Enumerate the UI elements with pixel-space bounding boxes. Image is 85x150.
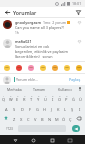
button[interactable]: 4 xyxy=(21,94,28,102)
button[interactable]: Ğ xyxy=(70,94,77,102)
button[interactable]: F xyxy=(26,104,34,112)
button[interactable]: ?123 xyxy=(1,124,17,133)
button[interactable]: Back xyxy=(11,136,19,144)
button[interactable]: Recents xyxy=(48,136,56,144)
staticText: I xyxy=(52,97,54,102)
button[interactable]: Ç xyxy=(67,114,74,122)
button[interactable]: 3 xyxy=(14,94,21,102)
button[interactable]: Voice input xyxy=(77,87,83,91)
button[interactable]: Ş xyxy=(69,104,76,112)
button[interactable]: Emoji xyxy=(3,64,10,71)
staticText: V xyxy=(34,117,37,122)
button[interactable]: L xyxy=(62,104,69,112)
staticText: E xyxy=(16,97,19,102)
button[interactable]: Like xyxy=(77,39,82,44)
staticText: Ç xyxy=(69,117,72,122)
staticText: X xyxy=(20,117,23,122)
staticText: P xyxy=(65,97,68,102)
button[interactable]: J xyxy=(48,104,55,112)
button[interactable]: 1 xyxy=(1,94,7,102)
button[interactable]: S xyxy=(10,104,18,112)
button[interactable]: N xyxy=(46,114,53,122)
staticText: D xyxy=(21,107,24,112)
staticText: 1h xyxy=(15,31,19,35)
button[interactable]: Tamam xyxy=(27,87,52,92)
button[interactable]: Merhaba xyxy=(2,87,27,92)
staticText: Z xyxy=(13,117,16,122)
staticText: Ş xyxy=(71,107,74,112)
button[interactable]: H xyxy=(41,104,48,112)
button[interactable]: Emoji xyxy=(15,64,22,71)
staticText: T xyxy=(30,97,33,102)
staticText: gnoolyorgasm xyxy=(15,20,41,25)
button[interactable]: B xyxy=(39,114,46,122)
staticText: 5 xyxy=(31,94,33,97)
button[interactable]: Home xyxy=(29,136,37,144)
staticText: (beceriklilerin) sorun xyxy=(15,54,53,59)
button[interactable]: Yorum ekle... xyxy=(14,77,68,82)
staticText: 1 xyxy=(3,94,5,97)
staticText: Ğ xyxy=(72,97,75,102)
button[interactable]: Emoji xyxy=(39,64,46,71)
staticText: W xyxy=(9,97,13,102)
button[interactable]: 8 xyxy=(49,94,56,102)
staticText: 2 xyxy=(10,94,12,97)
staticText: M xyxy=(55,117,59,122)
staticText: 6 xyxy=(38,94,40,97)
button[interactable]: V xyxy=(32,114,39,122)
staticText: Yorum ekle... xyxy=(16,77,38,82)
button[interactable]: 2 xyxy=(7,94,14,102)
staticText: Ü xyxy=(79,97,82,102)
button[interactable]: Like xyxy=(77,20,82,25)
button[interactable]: Z xyxy=(11,114,18,122)
button[interactable]: Send xyxy=(72,125,80,132)
button[interactable]: G xyxy=(34,104,41,112)
staticText: Yorumlar xyxy=(13,9,37,16)
button[interactable]: K xyxy=(55,104,62,112)
staticText: Merhaba xyxy=(7,87,22,92)
button[interactable]: mafia021 xyxy=(0,37,85,61)
button[interactable]: X xyxy=(18,114,25,122)
button[interactable]: Keyboard xyxy=(66,136,74,144)
button[interactable]: D xyxy=(18,104,26,112)
button[interactable]: Backspace xyxy=(74,114,84,122)
button[interactable]: Emoji xyxy=(63,64,70,71)
button[interactable]: Emoji xyxy=(51,64,58,71)
staticText: Sonuclarinizi en cok xyxy=(15,44,50,49)
staticText: 18:01 xyxy=(72,1,82,6)
button[interactable]: Ü xyxy=(77,94,84,102)
staticText: mafia021 xyxy=(15,39,32,44)
staticText: Tamam xyxy=(33,87,46,92)
button[interactable]: I xyxy=(76,104,83,112)
button[interactable]: 5 xyxy=(28,94,35,102)
button[interactable]: 9 xyxy=(56,94,63,102)
staticText: 4 xyxy=(24,94,26,97)
staticText: 3 xyxy=(17,94,19,97)
button[interactable]: A xyxy=(2,104,10,112)
staticText: begenilen, etkinlik ve paylasim odaklı xyxy=(15,49,75,54)
button[interactable]: Send xyxy=(74,8,82,16)
staticText: Y xyxy=(37,97,40,102)
staticText: O xyxy=(58,97,62,102)
staticText: K xyxy=(57,107,60,112)
button[interactable]: C xyxy=(25,114,32,122)
button[interactable]: gnoolyorgasm xyxy=(0,18,85,37)
staticText: Paylaş xyxy=(69,77,81,82)
button[interactable]: 7 xyxy=(42,94,49,102)
button[interactable]: Emoji xyxy=(27,64,34,71)
staticText: F xyxy=(29,107,32,112)
staticText: G xyxy=(36,107,39,112)
staticText: R xyxy=(23,97,26,102)
button[interactable]: Shift xyxy=(1,114,11,122)
button[interactable]: M xyxy=(53,114,60,122)
button[interactable]: Kullanıcı xyxy=(52,87,77,92)
button[interactable]: Paylaş xyxy=(68,77,82,82)
button[interactable]: Emoji xyxy=(75,64,82,71)
button[interactable]: Ö xyxy=(60,114,67,122)
button[interactable]: 6 xyxy=(35,94,42,102)
staticText: U xyxy=(44,97,47,102)
staticText: Kullanıcı xyxy=(58,87,72,92)
button[interactable]: Back xyxy=(3,8,11,16)
button[interactable]: 0 xyxy=(63,94,70,102)
